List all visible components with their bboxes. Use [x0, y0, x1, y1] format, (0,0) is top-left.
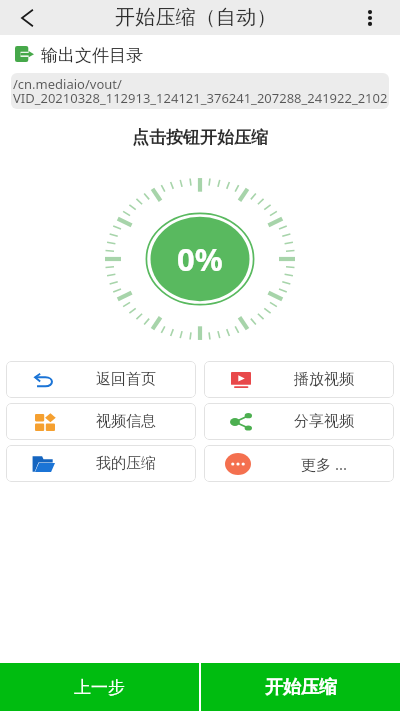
staticText: 上一步	[74, 677, 125, 698]
staticText: 我的压缩	[56, 454, 196, 473]
staticText: 开始压缩（自动）	[115, 5, 277, 30]
button[interactable]: 视频信息	[6, 403, 196, 440]
button[interactable]: 更多 ...	[204, 445, 394, 482]
button[interactable]: 分享视频	[204, 403, 394, 440]
button[interactable]: 返回首页	[6, 361, 196, 398]
button[interactable]: /cn.mediaio/vout/ VID_20210328_112913_12…	[11, 73, 389, 109]
button[interactable]: 播放视频	[204, 361, 394, 398]
button[interactable]: 上一步	[0, 663, 199, 711]
button[interactable]: Back	[0, 0, 53, 35]
staticText: 开始压缩	[265, 676, 337, 699]
staticText: 返回首页	[56, 370, 196, 389]
staticText: 播放视频	[254, 370, 394, 389]
staticText: 分享视频	[254, 412, 394, 431]
staticText: /cn.mediaio/vout/ VID_20210328_112913_12…	[13, 75, 388, 107]
button[interactable]: 开始压缩	[201, 663, 400, 711]
staticText: 0%	[177, 238, 223, 280]
button[interactable]: More options	[340, 0, 400, 35]
staticText: 点击按钮开始压缩	[0, 127, 400, 148]
staticText: 视频信息	[56, 412, 196, 431]
staticText: 输出文件目录	[41, 45, 143, 66]
button[interactable]: 输出文件目录	[0, 36, 400, 74]
button[interactable]: 我的压缩	[6, 445, 196, 482]
staticText: 更多 ...	[254, 454, 394, 474]
